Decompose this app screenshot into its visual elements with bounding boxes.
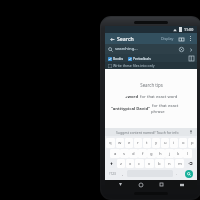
- button[interactable]: q: [106, 138, 115, 148]
- button[interactable]: Clear search: [178, 46, 185, 53]
- staticText: j: [169, 151, 171, 157]
- staticText: Books: [113, 56, 124, 61]
- staticText: z: [120, 161, 122, 167]
- button[interactable]: t: [143, 138, 151, 148]
- staticText: "antitypical David": [111, 106, 151, 112]
- button[interactable]: Back: [108, 35, 116, 43]
- staticText: 11:00: [184, 27, 194, 32]
- staticText: Periodicals: [133, 56, 151, 61]
- button[interactable]: p: [188, 138, 196, 148]
- button[interactable]: l: [183, 149, 192, 158]
- staticText: h: [159, 151, 162, 157]
- button[interactable]: Write these files into only: [108, 63, 155, 68]
- staticText: q: [109, 140, 112, 146]
- button[interactable]: Periodicals: [128, 56, 151, 61]
- staticText: l: [187, 151, 189, 157]
- staticText: ?123: [109, 172, 116, 176]
- button[interactable]: Home: [136, 180, 145, 189]
- staticText: c: [138, 161, 141, 167]
- button[interactable]: g: [147, 149, 156, 158]
- staticText: t: [146, 140, 148, 146]
- staticText: x: [129, 161, 132, 167]
- staticText: Search: [117, 35, 134, 42]
- staticText: e: [128, 140, 131, 146]
- button[interactable]: .: [174, 169, 180, 178]
- staticText: +word: [125, 94, 139, 100]
- staticText: Write these files into only: [113, 63, 155, 68]
- button[interactable]: Submit search: [187, 46, 194, 53]
- button[interactable]: r: [134, 138, 142, 148]
- staticText: s: [123, 151, 126, 157]
- staticText: d: [132, 151, 135, 157]
- button[interactable]: z: [117, 159, 125, 168]
- button[interactable]: Voice input: [188, 129, 194, 135]
- staticText: Search tips: [140, 82, 163, 88]
- button[interactable]: Shift: [106, 159, 116, 168]
- button[interactable]: k: [174, 149, 183, 158]
- staticText: m: [178, 161, 182, 167]
- button[interactable]: Screenshot: [177, 180, 186, 189]
- button[interactable]: o: [179, 138, 187, 148]
- button[interactable]: Back: [116, 180, 125, 189]
- staticText: n: [168, 161, 171, 167]
- button[interactable]: u: [161, 138, 169, 148]
- button[interactable]: Recent apps: [157, 180, 166, 189]
- staticText: b: [158, 161, 161, 167]
- button[interactable]: d: [129, 149, 138, 158]
- button[interactable]: f: [138, 149, 147, 158]
- button[interactable]: h: [156, 149, 165, 158]
- staticText: u: [164, 140, 167, 146]
- staticText: i: [173, 140, 175, 146]
- button[interactable]: Backspace: [185, 159, 196, 168]
- button[interactable]: v: [145, 159, 154, 168]
- staticText: for that exact phrase: [151, 103, 191, 115]
- staticText: p: [191, 140, 194, 146]
- button[interactable]: y: [152, 138, 160, 148]
- button[interactable]: More options: [187, 35, 194, 42]
- button[interactable]: m: [175, 159, 184, 168]
- staticText: for that exact word: [139, 94, 178, 100]
- button[interactable]: Grid view: [188, 55, 194, 61]
- button[interactable]: c: [135, 159, 144, 168]
- button[interactable]: a: [110, 149, 120, 158]
- staticText: f: [142, 151, 144, 157]
- staticText: r: [137, 140, 139, 146]
- button[interactable]: Library: [177, 35, 185, 43]
- button[interactable]: i: [170, 138, 178, 148]
- button[interactable]: ,: [120, 169, 126, 178]
- button[interactable]: ?123: [106, 169, 119, 178]
- staticText: w: [118, 140, 122, 146]
- staticText: .: [176, 171, 178, 176]
- button[interactable]: Books: [108, 56, 124, 61]
- button[interactable]: w: [116, 138, 124, 148]
- staticText: ,: [122, 171, 124, 176]
- button[interactable]: x: [126, 159, 134, 168]
- staticText: Suggest content named? Touch for info: [116, 130, 179, 135]
- button[interactable]: j: [165, 149, 174, 158]
- staticText: g: [150, 151, 153, 157]
- button[interactable]: s: [120, 149, 129, 158]
- button[interactable]: e: [125, 138, 133, 148]
- staticText: Display: [161, 36, 174, 41]
- button[interactable]: Search: [181, 169, 196, 178]
- staticText: y: [155, 140, 158, 146]
- staticText: a: [114, 151, 117, 157]
- button[interactable]: b: [155, 159, 164, 168]
- staticText: searching...: [115, 46, 138, 52]
- button[interactable]: n: [165, 159, 174, 168]
- staticText: v: [148, 161, 151, 167]
- staticText: k: [177, 151, 180, 157]
- staticText: o: [182, 140, 185, 146]
